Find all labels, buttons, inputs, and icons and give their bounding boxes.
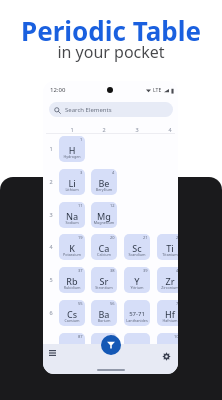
staticText: Rf — [157, 341, 178, 353]
button[interactable]: 21 — [124, 234, 150, 260]
button[interactable]: 22 — [157, 234, 178, 260]
button[interactable]: Menu — [44, 344, 61, 361]
staticText: Rb — [59, 275, 85, 287]
staticText: Rubidium — [59, 285, 85, 290]
staticText: Sr — [91, 275, 117, 287]
staticText: Barium — [91, 318, 117, 323]
staticText: 3 — [124, 126, 150, 133]
staticText: Na — [59, 210, 85, 222]
staticText: Potassium — [59, 252, 85, 257]
staticText: Li — [59, 177, 85, 189]
staticText: 56 — [110, 301, 115, 306]
staticText: Y — [124, 275, 150, 287]
button[interactable]: 88 — [91, 333, 117, 359]
button[interactable]: 3 — [59, 169, 85, 195]
button[interactable]: 87 — [59, 333, 85, 359]
staticText: 38 — [110, 268, 115, 273]
staticText: Beryllium — [91, 187, 117, 192]
staticText: in your pocket — [0, 41, 222, 63]
staticText: Mg — [91, 210, 117, 222]
staticText: 87 — [78, 334, 83, 339]
staticText: 104 — [174, 334, 178, 339]
staticText: Radium — [91, 351, 117, 356]
staticText: 4 — [112, 170, 115, 175]
staticText: Rutherfordium — [157, 351, 178, 356]
staticText: Lithium — [59, 187, 85, 192]
button[interactable]: 39 — [124, 267, 150, 293]
staticText: Titanium — [157, 252, 178, 257]
button[interactable]: 19 — [59, 234, 85, 260]
staticText: 55 — [78, 301, 83, 306]
button[interactable]: 20 — [91, 234, 117, 260]
staticText: 21 — [143, 235, 148, 240]
button[interactable]: Settings — [158, 348, 174, 364]
staticText: 4 — [46, 243, 56, 250]
staticText: H — [59, 144, 85, 156]
staticText: Hafnium — [157, 318, 178, 323]
staticText: Fr — [59, 341, 85, 353]
staticText: Ti — [157, 242, 178, 254]
staticText: 2 — [46, 178, 56, 185]
button[interactable]: Search Elements — [49, 102, 173, 117]
button[interactable]: 11 — [59, 202, 85, 228]
staticText: Hf — [157, 308, 178, 320]
button[interactable]: 37 — [59, 267, 85, 293]
button[interactable]: 40 — [157, 267, 178, 293]
staticText: Zr — [157, 275, 178, 287]
staticText: Be — [91, 177, 117, 189]
button[interactable]: Filter — [101, 335, 121, 355]
staticText: 20 — [110, 235, 115, 240]
staticText: 2 — [91, 126, 117, 133]
staticText: Yttrium — [124, 285, 150, 290]
staticText: 72 — [176, 301, 178, 306]
staticText: Ba — [91, 308, 117, 320]
button[interactable]: 12 — [91, 202, 117, 228]
staticText: 12:00 — [50, 86, 66, 94]
staticText: 3 — [46, 211, 56, 218]
staticText: 19 — [78, 235, 83, 240]
staticText: 89-103 — [124, 343, 150, 351]
staticText: 1 — [59, 126, 85, 133]
button[interactable]: 72 — [157, 300, 178, 326]
button[interactable]: 1 — [59, 136, 85, 162]
staticText: Ca — [91, 242, 117, 254]
staticText: Zirconium — [157, 285, 178, 290]
staticText: 6 — [46, 309, 56, 316]
staticText: 5 — [46, 276, 56, 283]
button[interactable]: 89-103 — [124, 333, 150, 359]
staticText: 37 — [78, 268, 83, 273]
staticText: 39 — [143, 268, 148, 273]
staticText: 1 — [46, 145, 56, 152]
staticText: 57-71 — [124, 310, 150, 318]
staticText: LTE — [153, 87, 162, 94]
staticText: Search Elements — [65, 106, 112, 114]
staticText: K — [59, 242, 85, 254]
staticText: 12 — [110, 203, 115, 208]
staticText: 88 — [110, 334, 115, 339]
staticText: Sc — [124, 242, 150, 254]
staticText: 22 — [176, 235, 178, 240]
staticText: 1 — [80, 137, 83, 142]
staticText: Cs — [59, 308, 85, 320]
staticText: Strontium — [91, 285, 117, 290]
button[interactable]: 104 — [157, 333, 178, 359]
staticText: Magnesium — [91, 220, 117, 225]
staticText: Scandium — [124, 252, 150, 257]
staticText: Lanthanides — [124, 318, 150, 323]
staticText: Periodic Table — [0, 13, 222, 48]
staticText: Sodium — [59, 220, 85, 225]
staticText: 11 — [78, 203, 83, 208]
staticText: Hydrogen — [59, 154, 85, 159]
button[interactable]: 38 — [91, 267, 117, 293]
staticText: Calcium — [91, 252, 117, 257]
staticText: Caesium — [59, 318, 85, 323]
staticText: 3 — [80, 170, 83, 175]
button[interactable]: 4 — [91, 169, 117, 195]
button[interactable]: 56 — [91, 300, 117, 326]
button[interactable]: 57-71 — [124, 300, 150, 326]
staticText: Ra — [91, 341, 117, 353]
staticText: 4 — [157, 126, 178, 133]
button[interactable]: 55 — [59, 300, 85, 326]
